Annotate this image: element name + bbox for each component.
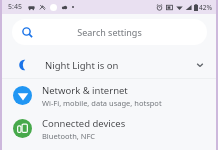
staticText: Connected devices bbox=[42, 117, 126, 130]
other: Expand Night Light options bbox=[194, 59, 206, 71]
staticText: Wi-Fi, mobile, data usage, hotspot bbox=[42, 98, 162, 108]
staticText: Night Light is on bbox=[45, 59, 194, 72]
staticText: Network & internet bbox=[42, 84, 128, 97]
button[interactable]: Connected devices bbox=[2, 112, 216, 145]
button[interactable]: Night Light is on bbox=[2, 52, 216, 78]
button[interactable]: Search settings bbox=[12, 19, 207, 45]
staticText: Bluetooth, NFC bbox=[42, 131, 96, 141]
button[interactable]: Network & internet bbox=[2, 79, 216, 112]
staticText: 5:45 bbox=[8, 2, 22, 12]
staticText: 42% bbox=[199, 3, 212, 12]
staticText: Search settings bbox=[33, 26, 186, 38]
